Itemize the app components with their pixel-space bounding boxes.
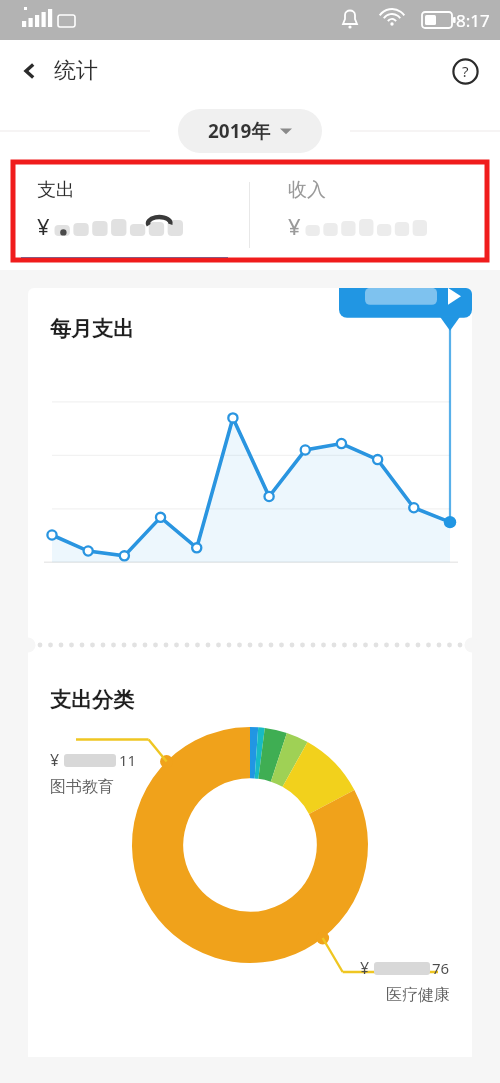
staticText: 76: [432, 958, 450, 978]
staticText: ¥: [288, 211, 301, 241]
staticText: ?: [462, 61, 469, 81]
staticText: 8:17: [456, 9, 490, 32]
staticText: ¥: [360, 957, 370, 979]
button[interactable]: Back: [0, 49, 112, 93]
staticText: 统计: [54, 57, 98, 85]
staticText: 收入: [288, 178, 326, 202]
staticText: ¥: [50, 749, 60, 771]
button[interactable]: 2019年: [178, 109, 322, 153]
button[interactable]: 收入: [250, 160, 500, 270]
staticText: 支出: [37, 178, 75, 202]
staticText: 支出分类: [50, 687, 134, 713]
button[interactable]: 支出: [0, 160, 249, 270]
staticText: ¥: [37, 211, 50, 241]
staticText: 2019年: [208, 118, 271, 144]
button[interactable]: 每月支出: [28, 288, 472, 633]
staticText: 医疗健康: [386, 985, 450, 1005]
other: Back: [20, 61, 40, 81]
staticText: 11: [119, 750, 137, 770]
button[interactable]: Help: [446, 52, 484, 90]
staticText: 图书教育: [50, 777, 114, 797]
button[interactable]: 支出分类: [28, 657, 472, 1057]
staticText: 每月支出: [50, 316, 134, 342]
